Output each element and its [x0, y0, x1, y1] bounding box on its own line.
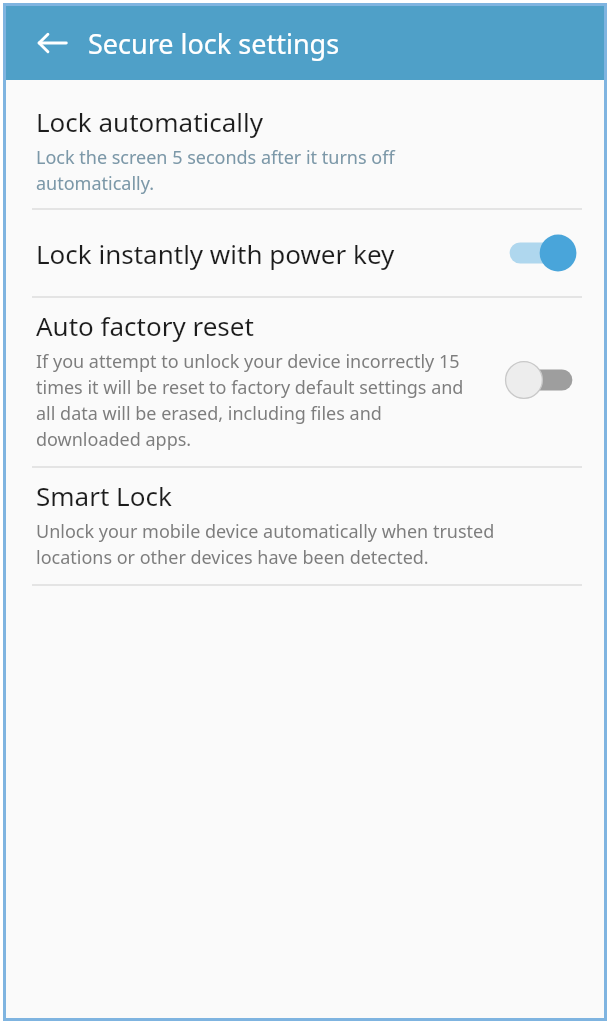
button[interactable]: Off: [508, 357, 582, 403]
staticText: Secure lock settings: [88, 25, 340, 62]
staticText: Lock instantly with power key: [36, 236, 395, 271]
button[interactable]: Back: [28, 19, 76, 67]
staticText: Lock the screen 5 seconds after it turns…: [36, 145, 466, 196]
staticText: Auto factory reset: [36, 308, 254, 343]
button[interactable]: Lock automatically: [6, 96, 604, 208]
button[interactable]: Auto factory reset: [6, 298, 604, 466]
staticText: Lock automatically: [36, 104, 263, 139]
button[interactable]: Smart Lock: [6, 468, 604, 584]
staticText: Smart Lock: [36, 478, 172, 513]
staticText: Unlock your mobile device automatically …: [36, 519, 574, 570]
staticText: If you attempt to unlock your device inc…: [36, 349, 466, 452]
button[interactable]: On: [500, 230, 574, 276]
button[interactable]: Lock instantly with power key: [6, 210, 604, 296]
